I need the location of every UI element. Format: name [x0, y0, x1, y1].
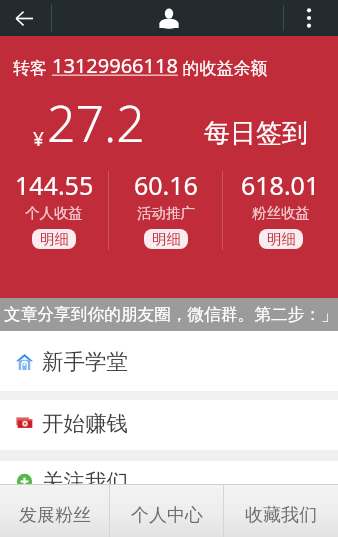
button[interactable]: 新手学堂 [0, 331, 338, 391]
button[interactable]: Back [0, 0, 48, 36]
button[interactable]: 明细 [259, 229, 303, 249]
staticText: 活动推广 [137, 204, 195, 222]
staticText: 发展粉丝 [19, 504, 91, 527]
staticText: 文章分享到你的朋友圈，微信群。第二步：」 [4, 304, 338, 325]
staticText: 明细 [152, 230, 181, 248]
staticText: 粉丝收益 [252, 204, 310, 222]
staticText: 的收益余额 [178, 56, 268, 79]
button[interactable]: More options [291, 0, 327, 36]
staticText: ¥ [33, 126, 44, 152]
staticText: 每日签到 [204, 117, 308, 150]
staticText: 618.01 [241, 168, 320, 202]
button[interactable]: 每日签到 [202, 115, 310, 152]
staticText: 个人中心 [131, 504, 203, 527]
staticText: 新手学堂 [42, 348, 128, 375]
staticText: 144.55 [15, 168, 94, 202]
staticText: 个人收益 [25, 204, 83, 222]
staticText: 关注我们 [42, 468, 128, 495]
button[interactable]: 明细 [32, 229, 76, 249]
staticText: 转客 [13, 56, 52, 79]
button[interactable]: 个人中心 [110, 485, 223, 537]
button[interactable]: 关注我们 [0, 461, 338, 511]
staticText: 开始赚钱 [42, 410, 128, 437]
staticText: 明细 [40, 230, 69, 248]
staticText: 13129966118 [52, 52, 178, 79]
staticText: 60.16 [134, 168, 198, 202]
button[interactable]: Profile [146, 0, 192, 36]
staticText: 收藏我们 [245, 504, 317, 527]
staticText: 27.2 [47, 89, 145, 157]
staticText: 明细 [267, 230, 296, 248]
button[interactable]: 发展粉丝 [0, 485, 109, 537]
button[interactable]: 明细 [144, 229, 188, 249]
button[interactable]: 收藏我们 [224, 485, 338, 537]
button[interactable]: 开始赚钱 [0, 400, 338, 450]
